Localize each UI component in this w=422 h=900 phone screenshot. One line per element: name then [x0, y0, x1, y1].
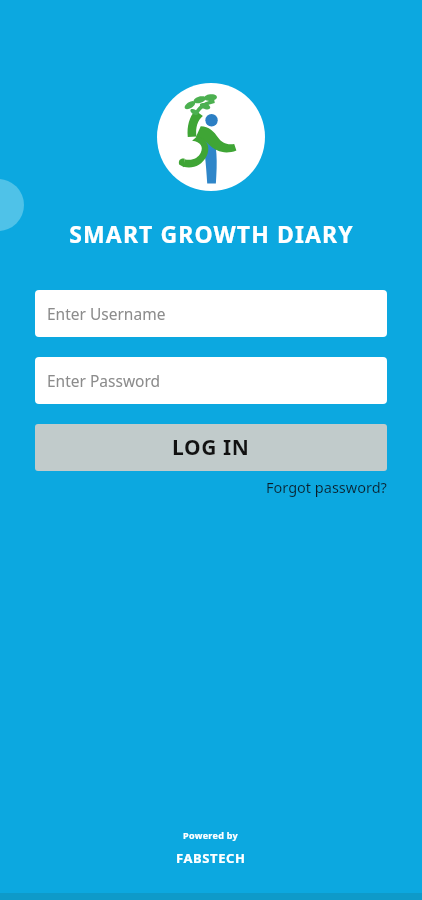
button[interactable]: Forgot password?	[266, 477, 387, 497]
staticText: LOG IN	[172, 433, 250, 462]
button[interactable]: LOG IN	[35, 424, 387, 471]
staticText: FABSTECH	[176, 849, 246, 867]
staticText: SMART GROWTH DIARY	[69, 218, 354, 249]
staticText: Forgot password?	[266, 477, 387, 497]
staticText: Enter Username	[47, 303, 166, 324]
staticText: Enter Password	[47, 370, 161, 391]
staticText: Powered by	[183, 829, 239, 841]
button[interactable]: Enter Username	[35, 290, 387, 337]
button[interactable]: Enter Password	[35, 357, 387, 404]
